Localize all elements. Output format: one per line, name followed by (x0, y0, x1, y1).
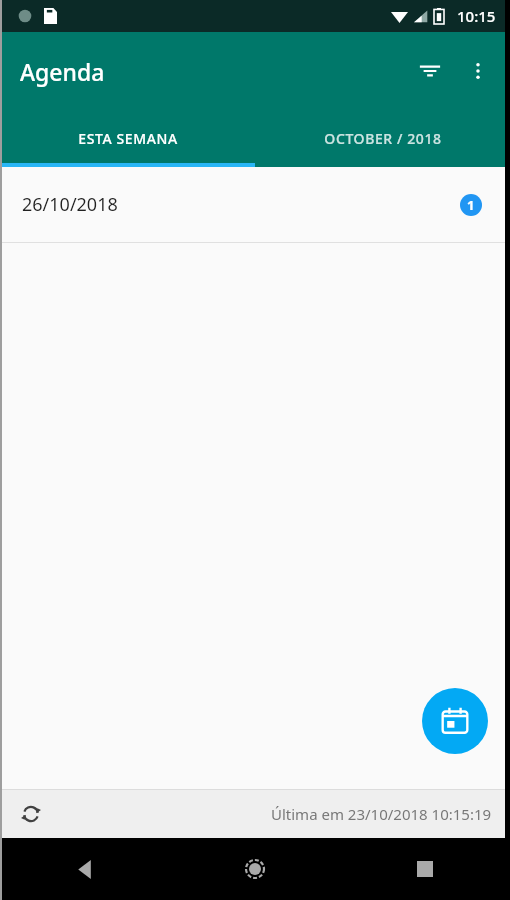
staticText: 26/10/2018 (22, 192, 118, 217)
staticText: 1 (467, 196, 475, 214)
button[interactable]: New appointment (422, 688, 488, 754)
button[interactable]: Home (170, 838, 340, 900)
staticText: OCTOBER / 2018 (324, 129, 442, 148)
staticText: 10:15 (457, 6, 496, 26)
button[interactable]: Back (0, 838, 170, 900)
button[interactable]: More options (454, 47, 502, 95)
button[interactable]: ESTA SEMANA (0, 110, 255, 167)
staticText: ESTA SEMANA (78, 129, 178, 148)
button[interactable]: Sync (10, 793, 52, 835)
button[interactable]: OCTOBER / 2018 (255, 110, 510, 167)
button[interactable]: Filter (406, 47, 454, 95)
button[interactable]: Recent apps (340, 838, 510, 900)
staticText: Agenda (20, 56, 105, 87)
staticText: Última em 23/10/2018 10:15:19 (271, 804, 492, 824)
button[interactable]: 26/10/2018 (0, 167, 510, 242)
